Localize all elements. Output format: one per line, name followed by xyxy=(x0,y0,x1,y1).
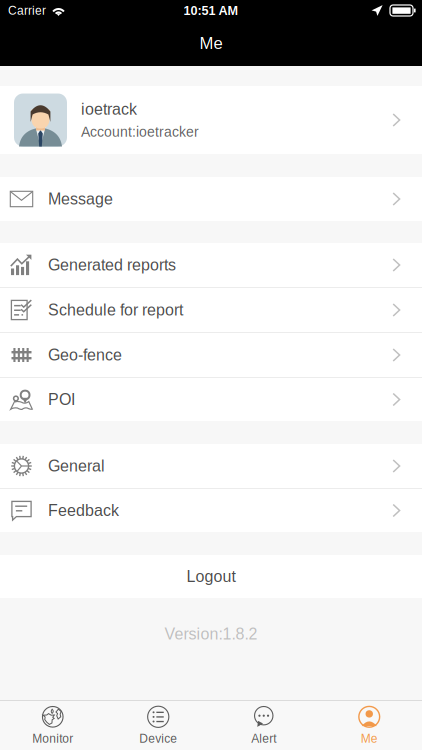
staticText: POI xyxy=(48,391,75,408)
button[interactable]: Me xyxy=(316,701,422,750)
button[interactable]: Schedule for report xyxy=(0,288,422,332)
staticText: Alert xyxy=(251,732,276,745)
staticText: Monitor xyxy=(32,732,73,745)
staticText: Feedback xyxy=(48,502,119,519)
staticText: Generated reports xyxy=(48,256,176,274)
staticText: Logout xyxy=(186,568,235,585)
staticText: Version:1.8.2 xyxy=(164,625,257,643)
button[interactable]: Alert xyxy=(211,701,316,750)
button[interactable]: Feedback xyxy=(0,489,422,532)
button[interactable]: Geo-fence xyxy=(0,333,422,377)
button[interactable]: Message xyxy=(0,177,422,221)
staticText: Carrier xyxy=(8,4,46,17)
button[interactable]: General xyxy=(0,444,422,488)
staticText: 10:51 AM xyxy=(183,3,238,18)
staticText: Geo-fence xyxy=(48,346,122,364)
button[interactable]: ioetrack xyxy=(0,86,422,154)
staticText: Account:ioetracker xyxy=(81,124,199,140)
staticText: Message xyxy=(48,190,113,208)
staticText: Me xyxy=(199,34,222,53)
staticText: Schedule for report xyxy=(48,301,183,319)
button[interactable]: Logout xyxy=(0,555,422,598)
button[interactable]: Device xyxy=(105,701,211,750)
button[interactable]: Monitor xyxy=(0,701,105,750)
staticText: Device xyxy=(139,732,177,745)
staticText: Me xyxy=(361,732,378,745)
staticText: General xyxy=(48,457,105,475)
staticText: ioetrack xyxy=(81,100,137,118)
button[interactable]: Generated reports xyxy=(0,243,422,287)
button[interactable]: POI xyxy=(0,378,422,421)
